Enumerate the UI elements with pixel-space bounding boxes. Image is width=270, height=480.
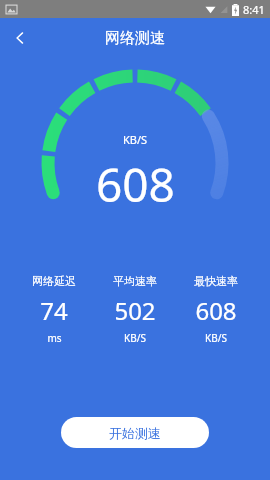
staticText: KB/S: [123, 132, 148, 147]
staticText: 开始测速: [109, 425, 161, 441]
staticText: 平均速率: [113, 274, 157, 288]
staticText: 最快速率: [194, 274, 238, 288]
staticText: 8:41: [243, 2, 265, 17]
staticText: ms: [47, 331, 62, 345]
button[interactable]: 开始测速: [61, 417, 209, 448]
staticText: 网络延迟: [32, 274, 76, 288]
staticText: 74: [40, 294, 68, 327]
button[interactable]: Back: [0, 18, 40, 58]
staticText: 502: [114, 294, 156, 327]
staticText: 网络测速: [105, 29, 165, 48]
staticText: 608: [96, 153, 175, 216]
staticText: KB/S: [124, 331, 146, 345]
staticText: KB/S: [205, 331, 227, 345]
staticText: 608: [195, 294, 237, 327]
